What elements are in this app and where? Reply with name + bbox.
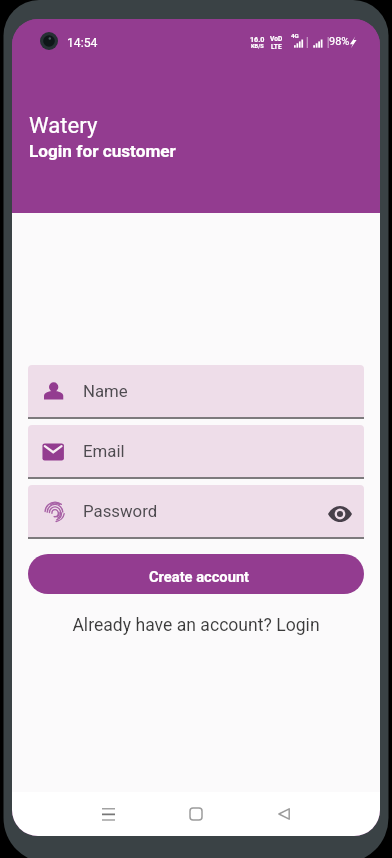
staticText: LTE bbox=[271, 43, 282, 51]
staticText: 14:54 bbox=[67, 36, 98, 50]
button[interactable]: Already have an account? Login bbox=[28, 615, 364, 636]
staticText: Name bbox=[83, 381, 128, 401]
button[interactable]: Show password bbox=[327, 501, 353, 527]
staticText: VoD bbox=[270, 35, 283, 43]
button[interactable]: Home bbox=[174, 792, 218, 836]
staticText: 16.0 bbox=[250, 35, 265, 43]
button[interactable]: Password bbox=[28, 485, 364, 537]
staticText: Create account bbox=[149, 568, 250, 585]
button[interactable]: Email bbox=[28, 425, 364, 477]
button[interactable]: Back bbox=[262, 792, 306, 836]
staticText: KB/S bbox=[251, 43, 264, 50]
button[interactable]: Create account bbox=[28, 554, 364, 594]
button[interactable]: Name bbox=[28, 365, 364, 417]
staticText: Already have an account? Login bbox=[72, 615, 320, 636]
staticText: Password bbox=[83, 501, 158, 521]
staticText: 98% bbox=[329, 35, 350, 48]
staticText: Watery bbox=[29, 112, 98, 138]
staticText: Login for customer bbox=[29, 141, 176, 161]
staticText: 4G bbox=[291, 32, 299, 39]
button[interactable]: Recent apps bbox=[86, 792, 130, 836]
staticText: Email bbox=[83, 441, 125, 461]
